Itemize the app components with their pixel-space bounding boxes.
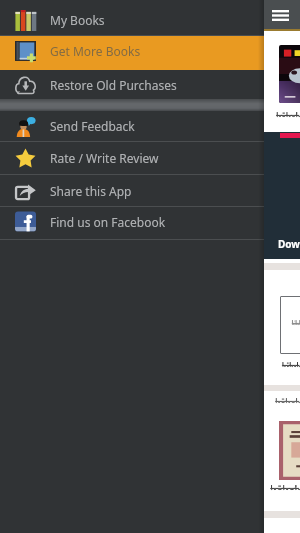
button[interactable] (0, 175, 264, 208)
button[interactable]: Open navigation drawer (268, 4, 292, 26)
button[interactable] (0, 142, 264, 175)
button[interactable] (0, 36, 264, 70)
button[interactable] (0, 207, 264, 240)
staticText: My Books (50, 12, 105, 28)
button[interactable] (0, 111, 264, 142)
staticText: Down (278, 237, 300, 251)
staticText: Share this App (50, 183, 132, 199)
button[interactable] (0, 70, 264, 101)
staticText: Get More Books (50, 43, 141, 59)
button[interactable] (0, 0, 264, 36)
staticText: Restore Old Purchases (50, 77, 177, 93)
staticText: Send Feedback (50, 118, 135, 134)
staticText: Rate / Write Review (50, 150, 159, 166)
staticText: Find us on Facebook (50, 214, 166, 230)
